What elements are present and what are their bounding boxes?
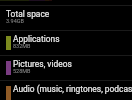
button[interactable]: Pictures, videos [0,56,132,80]
button[interactable]: Audio (music, ringtones, podcasts) [0,81,132,100]
button[interactable]: Total space [0,6,132,30]
staticText: Applications [13,34,60,44]
staticText: Total space [6,9,50,19]
button[interactable]: Applications [0,31,132,55]
staticText: 3.94GB [6,18,24,24]
staticText: 528MB [13,68,31,74]
staticText: 832MB [13,43,31,49]
staticText: Audio (music, ringtones, podcasts) [13,84,132,94]
staticText: Pictures, videos [13,59,72,69]
